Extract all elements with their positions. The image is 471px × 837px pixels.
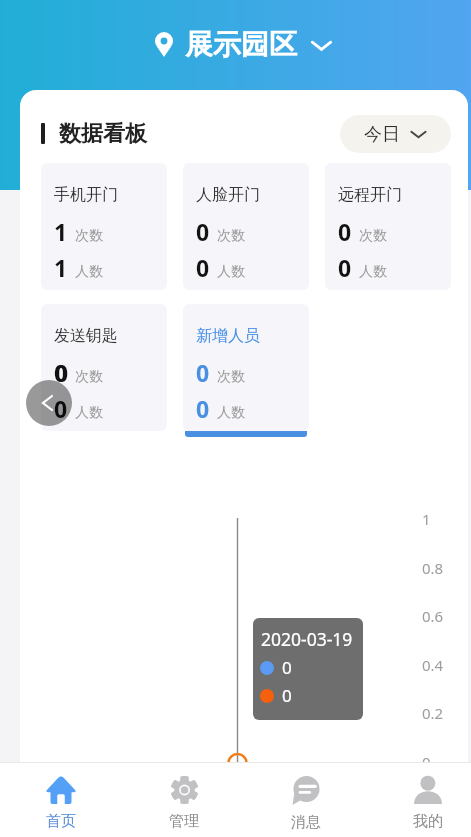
staticText: 人数 [75,404,103,422]
staticText: 0 [338,216,352,247]
button[interactable]: 消息 [276,776,336,837]
button[interactable]: 手机开门 [41,163,167,290]
staticText: 0 [196,393,210,424]
staticText: 我的 [413,812,443,831]
staticText: 次数 [359,227,387,245]
staticText: 0.2 [422,703,444,723]
staticText: 0 [196,252,210,283]
staticText: 1 [422,509,431,529]
staticText: 发送钥匙 [54,326,118,346]
staticText: 2020-03-19 [261,627,353,651]
button[interactable]: 远程开门 [325,163,451,290]
staticText: 今日 [364,123,400,146]
staticText: 0 [196,216,210,247]
staticText: 0 [282,656,292,679]
staticText: 人数 [75,263,103,281]
staticText: 手机开门 [54,185,118,205]
staticText: 0 [422,752,431,762]
staticText: 人数 [217,404,245,422]
staticText: 0 [282,684,292,707]
staticText: 展示园区 [185,27,297,62]
button[interactable]: 人脸开门 [183,163,309,290]
staticText: 0.6 [422,606,444,626]
staticText: 1 [54,216,68,247]
staticText: 人脸开门 [196,185,260,205]
staticText: 0 [55,357,69,388]
button[interactable]: 今日 [340,115,451,153]
button[interactable]: Collapse panel [26,380,72,426]
staticText: 数据看板 [59,120,147,148]
staticText: 次数 [75,227,103,245]
staticText: 管理 [169,812,199,831]
staticText: 0 [196,357,210,388]
staticText: 人数 [217,263,245,281]
staticText: 人数 [359,263,387,281]
staticText: 次数 [217,227,245,245]
staticText: 0.8 [422,558,444,578]
staticText: 次数 [75,368,103,386]
staticText: 0 [54,393,68,424]
staticText: 次数 [217,368,245,386]
button[interactable]: 展示园区 [149,21,338,68]
button[interactable]: 管理 [154,776,214,837]
staticText: 0 [54,357,68,388]
staticText: 首页 [46,812,76,831]
button[interactable]: 发送钥匙 [41,304,167,431]
staticText: 消息 [291,813,321,832]
button[interactable]: 首页 [31,776,91,837]
staticText: 新增人员 [196,326,260,346]
staticText: 1 [54,252,68,283]
staticText: 0.4 [422,655,444,675]
button[interactable]: 新增人员 [183,304,309,437]
staticText: 远程开门 [338,185,402,205]
button[interactable]: 我的 [398,776,458,837]
staticText: 0 [338,252,352,283]
